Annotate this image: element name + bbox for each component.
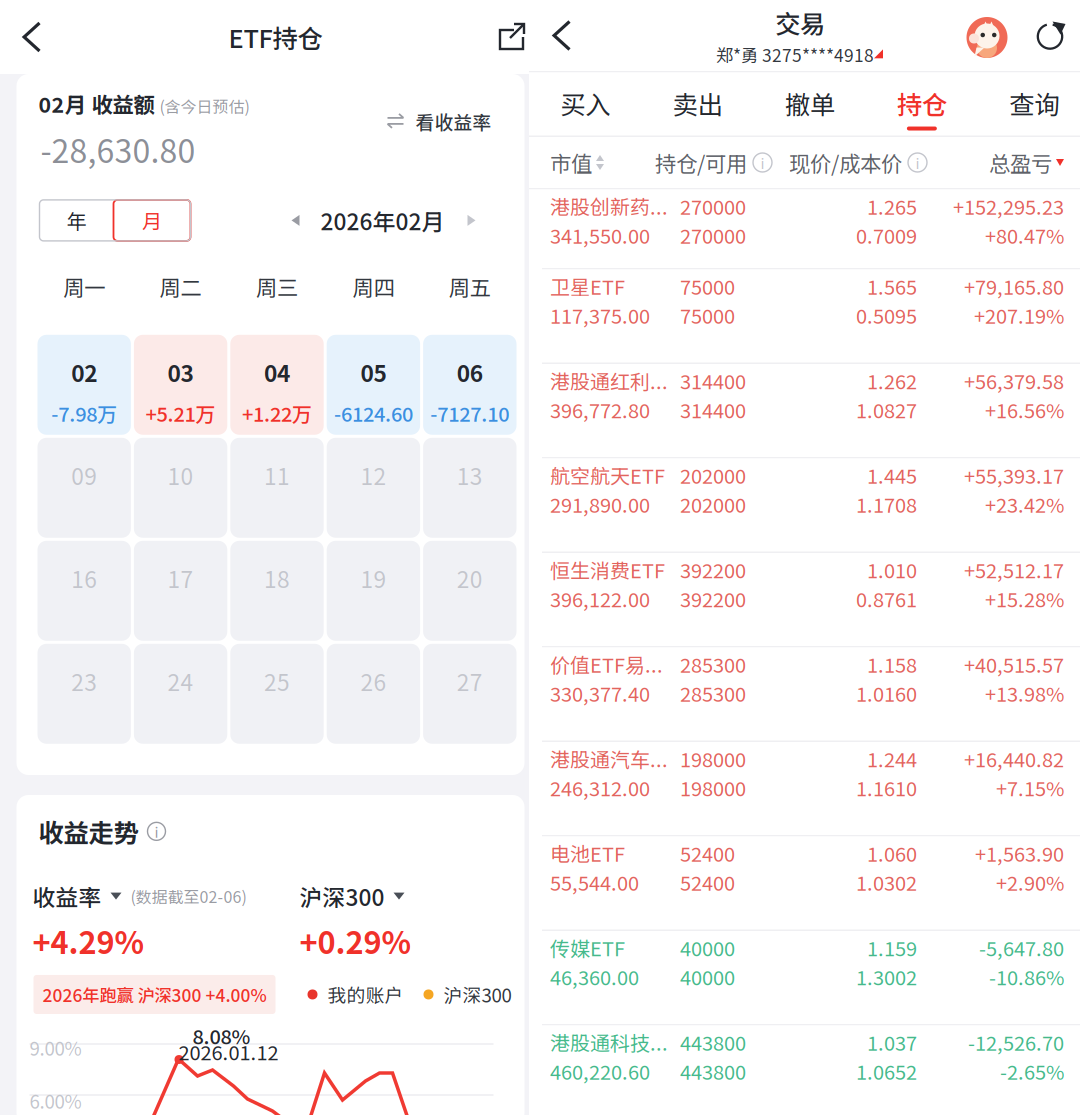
staticText: 396,122.00	[550, 584, 650, 613]
staticText: 12	[360, 459, 386, 492]
button[interactable]: 月	[113, 200, 190, 241]
staticText: 06	[457, 356, 483, 389]
staticText: 02月	[38, 88, 85, 119]
staticText: 6.00%	[29, 1087, 81, 1114]
staticText: 交易	[775, 4, 825, 41]
staticText: -12,526.70	[968, 1027, 1064, 1056]
button[interactable]: 电池ETF	[529, 836, 1080, 929]
button[interactable]: 上一月	[278, 201, 312, 239]
staticText: 198000	[680, 773, 746, 802]
staticText: 0.7009	[856, 220, 917, 249]
staticText: 285300	[680, 678, 746, 707]
staticText: 40000	[680, 962, 735, 991]
button[interactable]: 返回	[535, 0, 589, 71]
staticText: 2026.01.12	[178, 1037, 278, 1066]
button[interactable]: 卫星ETF	[529, 269, 1080, 362]
button[interactable]: 价值ETF易...	[529, 647, 1080, 740]
button[interactable]: 港股通汽车...	[529, 742, 1080, 835]
staticText: 460,220.60	[550, 1056, 650, 1085]
staticText: 285300	[680, 649, 746, 678]
staticText: 55,544.00	[550, 867, 639, 896]
staticText: -5,647.80	[979, 933, 1064, 962]
button[interactable]: 传媒ETF	[529, 931, 1080, 1024]
staticText: +16,440.82	[964, 744, 1064, 773]
staticText: 1.037	[867, 1027, 917, 1056]
staticText: 价值ETF易...	[550, 649, 663, 678]
button[interactable]: 买入	[529, 72, 641, 135]
staticText: 撤单	[785, 85, 835, 121]
button[interactable]: 分享	[497, 0, 528, 74]
staticText: 持仓	[897, 85, 947, 121]
staticText: 0.8761	[856, 584, 917, 613]
staticText: 收益率	[32, 880, 101, 912]
staticText: 52400	[680, 838, 735, 867]
button[interactable]: 持仓	[866, 72, 978, 135]
staticText: 持仓/可用	[655, 147, 747, 178]
staticText: 03	[168, 356, 194, 389]
staticText: 收益走势	[38, 813, 138, 850]
staticText: -7127.10	[430, 399, 509, 428]
staticText: 25	[264, 665, 290, 698]
staticText: ETF持仓	[228, 19, 322, 55]
staticText: i	[915, 152, 919, 173]
staticText: 月	[142, 206, 162, 235]
staticText: 341,550.00	[550, 220, 650, 249]
staticText: 18	[264, 562, 290, 595]
button[interactable]: 刷新	[1026, 10, 1076, 60]
staticText: 卖出	[672, 85, 722, 121]
staticText: 港股通红利...	[550, 366, 668, 395]
staticText: 23	[71, 665, 97, 698]
staticText: 1.0160	[856, 678, 917, 707]
staticText: 314400	[680, 366, 746, 395]
staticText: 传媒ETF	[550, 933, 625, 962]
button[interactable]: 港股创新药...	[529, 189, 1080, 268]
staticText: 02	[71, 356, 97, 389]
staticText: (含今日预估)	[159, 94, 249, 117]
button[interactable]: 航空航天ETF	[529, 458, 1080, 551]
button[interactable]: 撤单	[753, 72, 866, 135]
staticText: 查询	[1009, 85, 1059, 121]
staticText: 看收益率	[415, 108, 491, 135]
staticText: 26	[360, 665, 386, 698]
staticText: i	[760, 152, 764, 173]
staticText: 16	[71, 562, 97, 595]
staticText: 46,360.00	[550, 962, 639, 991]
staticText: 沪深300	[443, 981, 511, 1008]
staticText: 1.010	[867, 555, 917, 584]
staticText: 周四	[352, 271, 394, 302]
button[interactable]: 年	[39, 201, 113, 240]
staticText: 周一	[63, 271, 105, 302]
staticText: +207.19%	[974, 300, 1064, 329]
button[interactable]: 下一月	[454, 201, 488, 239]
button[interactable]: 恒生消费ETF	[529, 553, 1080, 646]
staticText: 11	[264, 459, 290, 492]
staticText: +40,515.57	[964, 649, 1064, 678]
button[interactable]: 港股通科技...	[529, 1025, 1080, 1115]
staticText: 291,890.00	[550, 489, 650, 518]
staticText: +79,165.80	[964, 271, 1064, 300]
staticText: 港股通科技...	[550, 1027, 668, 1056]
staticText: +80.47%	[985, 220, 1064, 249]
staticText: 1.244	[867, 744, 917, 773]
staticText: 20	[457, 562, 483, 595]
staticText: 周三	[256, 271, 298, 302]
staticText: +16.56%	[985, 395, 1064, 424]
staticText: i	[154, 821, 158, 842]
staticText: 1.0652	[856, 1056, 917, 1085]
staticText: -6124.60	[334, 399, 413, 428]
button[interactable]: 卖出	[641, 72, 753, 135]
staticText: 1.1708	[856, 489, 917, 518]
staticText: 198000	[680, 744, 746, 773]
button[interactable]: 看收益率	[381, 104, 496, 139]
staticText: 8.08%	[192, 1021, 250, 1050]
staticText: +0.29%	[299, 918, 411, 963]
button[interactable]: 查询	[978, 72, 1080, 135]
staticText: 卫星ETF	[550, 271, 625, 300]
button[interactable]: 账户头像	[958, 6, 1016, 64]
staticText: 09	[71, 459, 97, 492]
button[interactable]: 港股通红利...	[529, 364, 1080, 457]
staticText: 1.159	[867, 933, 917, 962]
button[interactable]: 返回	[3, 0, 61, 74]
staticText: 郑*勇 3275****4918	[716, 42, 874, 67]
staticText: 周五	[449, 271, 491, 302]
